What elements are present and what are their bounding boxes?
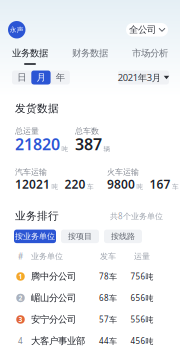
staticText: 9800 bbox=[107, 176, 135, 192]
staticText: 吨 bbox=[136, 183, 143, 191]
staticText: 发货数据 bbox=[15, 102, 59, 115]
button[interactable]: 4 bbox=[7, 330, 173, 352]
staticText: 安宁分公司 bbox=[31, 314, 76, 325]
staticText: 吨 bbox=[51, 183, 58, 191]
staticText: 3 bbox=[18, 315, 22, 324]
staticText: 全公司 bbox=[129, 24, 156, 35]
staticText: 167 bbox=[149, 176, 170, 192]
staticText: 220 bbox=[64, 176, 85, 192]
staticText: 市场分析 bbox=[132, 47, 168, 59]
staticText: 556吨 bbox=[130, 314, 153, 325]
staticText: 387 bbox=[75, 133, 102, 155]
staticText: 总运量 bbox=[15, 126, 39, 136]
staticText: 按线路 bbox=[111, 231, 135, 241]
staticText: 发车 bbox=[100, 251, 116, 261]
staticText: 运量 bbox=[134, 251, 150, 261]
staticText: 按项目 bbox=[68, 231, 92, 241]
button[interactable]: 1 bbox=[7, 266, 173, 287]
button[interactable]: 2 bbox=[7, 287, 173, 309]
staticText: 656吨 bbox=[130, 293, 153, 303]
staticText: 财务数据 bbox=[72, 47, 108, 59]
button[interactable]: 按项目 bbox=[61, 230, 99, 243]
staticText: 57车 bbox=[99, 314, 117, 325]
button[interactable]: 全公司 bbox=[126, 23, 168, 36]
staticText: 腾中分公司 bbox=[31, 271, 76, 282]
button[interactable]: 按业务单位 bbox=[14, 230, 56, 243]
staticText: 火车运输 bbox=[107, 167, 139, 177]
staticText: # bbox=[18, 251, 23, 262]
staticText: 共8个业务单位 bbox=[110, 211, 163, 221]
staticText: 业务排行 bbox=[15, 209, 59, 223]
staticText: 4 bbox=[18, 336, 23, 346]
button[interactable]: 2021年3月 bbox=[118, 70, 169, 84]
staticText: 1 bbox=[18, 272, 22, 281]
staticText: 日 bbox=[17, 72, 26, 83]
staticText: 月 bbox=[36, 72, 45, 83]
button[interactable]: Profile bbox=[8, 21, 25, 38]
staticText: 车 bbox=[172, 183, 179, 191]
staticText: 业务数据 bbox=[12, 47, 48, 59]
button[interactable]: 业务数据 bbox=[0, 46, 60, 65]
button[interactable]: 3 bbox=[7, 309, 173, 330]
staticText: 21820 bbox=[15, 133, 60, 155]
staticText: 永声 bbox=[10, 26, 24, 34]
staticText: 吨 bbox=[61, 145, 68, 153]
staticText: 总车数 bbox=[75, 126, 99, 136]
button[interactable]: 按线路 bbox=[104, 230, 142, 243]
staticText: 78车 bbox=[99, 271, 117, 282]
staticText: 68车 bbox=[99, 293, 117, 303]
staticText: 按业务单位 bbox=[15, 231, 55, 241]
staticText: 辆 bbox=[103, 145, 110, 153]
staticText: 2021年3月 bbox=[118, 71, 161, 84]
staticText: 车 bbox=[87, 183, 94, 191]
staticText: 大客户事业部 bbox=[31, 335, 85, 347]
staticText: 2 bbox=[18, 293, 22, 302]
staticText: 12021 bbox=[15, 176, 50, 192]
staticText: 业务单位 bbox=[31, 251, 63, 261]
button[interactable]: 市场分析 bbox=[120, 46, 180, 65]
button[interactable]: 月 bbox=[31, 70, 51, 84]
staticText: 年 bbox=[56, 72, 65, 83]
staticText: 456吨 bbox=[130, 336, 153, 346]
staticText: 汽车运输 bbox=[15, 167, 47, 177]
button[interactable]: 年 bbox=[51, 70, 70, 84]
staticText: 44车 bbox=[99, 336, 117, 346]
button[interactable]: 日 bbox=[12, 70, 31, 84]
staticText: 756吨 bbox=[130, 271, 153, 282]
button[interactable]: 财务数据 bbox=[60, 46, 120, 65]
staticText: 嵋山分公司 bbox=[31, 292, 76, 304]
